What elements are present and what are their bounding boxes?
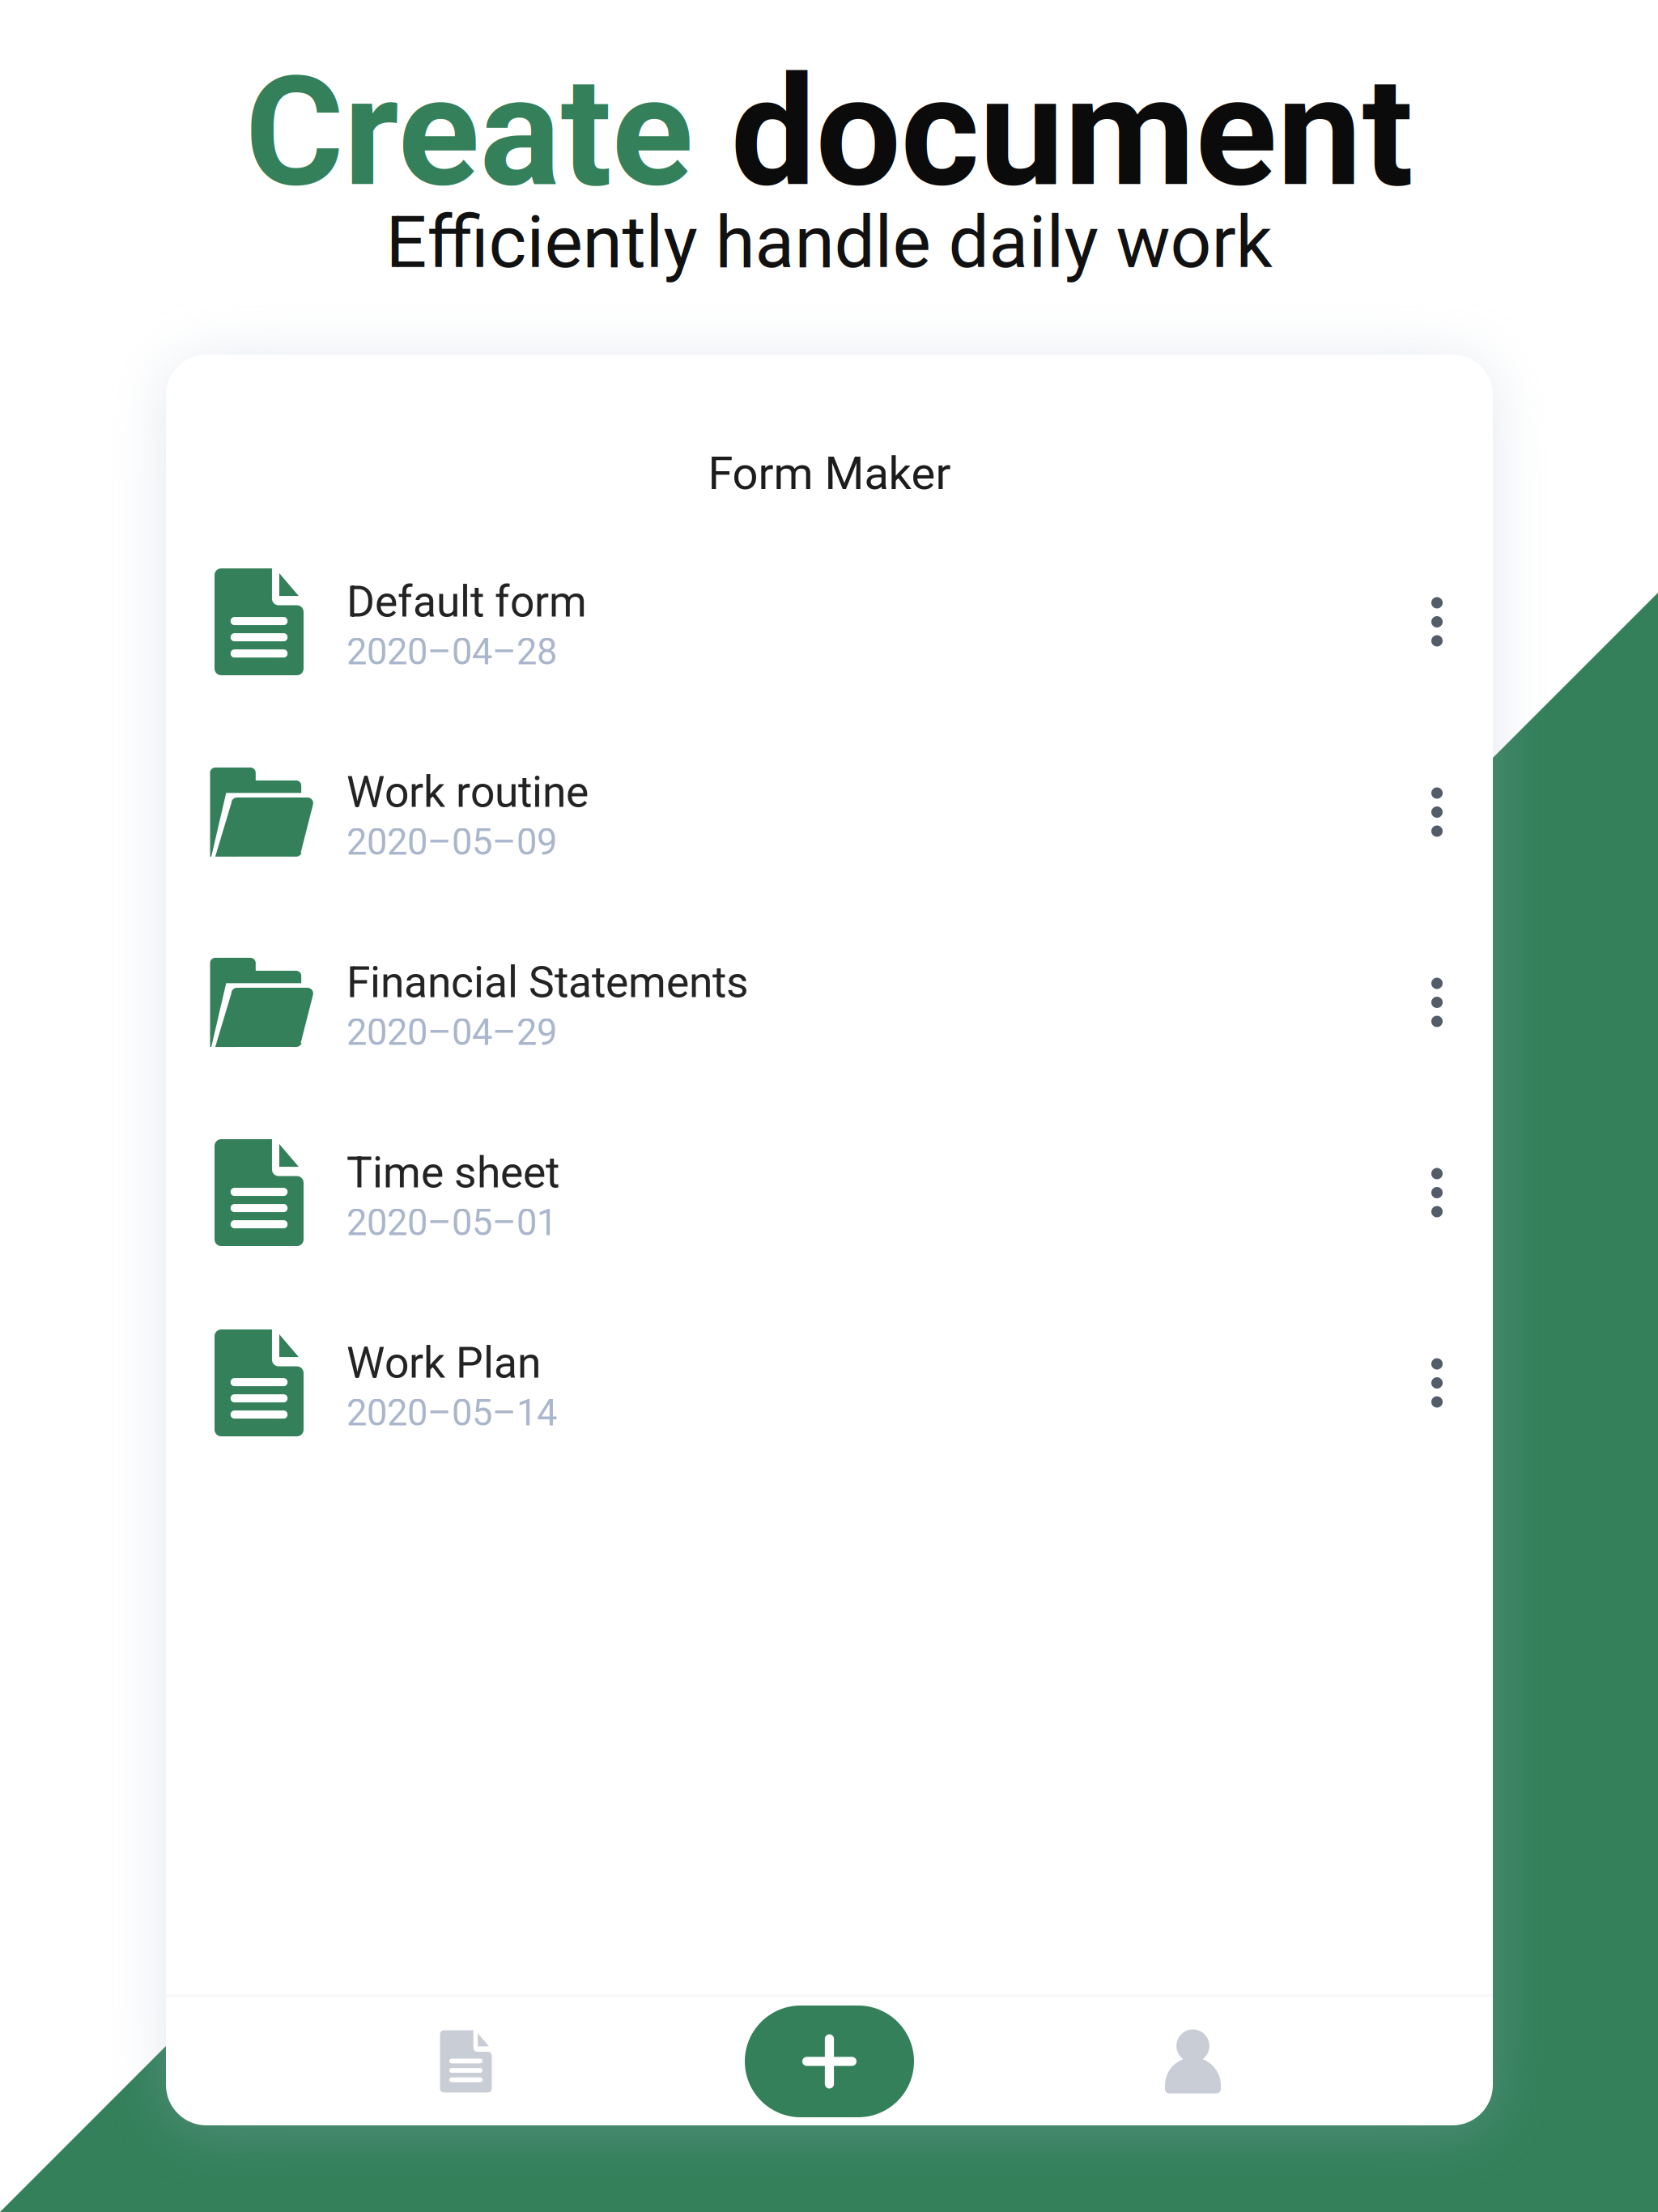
staticText: Efficiently handle daily work (386, 200, 1272, 285)
button[interactable]: Profile (1011, 1997, 1375, 2125)
button[interactable]: More options for Work routine (1392, 757, 1482, 867)
button[interactable]: More options for Financial Statements (1392, 947, 1482, 1057)
staticText: 2020–05–09 (346, 821, 557, 864)
staticText: Default form (346, 576, 587, 627)
staticText: Work routine (346, 767, 589, 817)
staticText: Create (245, 44, 731, 221)
staticText: 2020–05–01 (346, 1201, 557, 1244)
staticText: document (731, 44, 1413, 221)
button[interactable]: Work Plan (207, 1328, 1405, 1438)
staticText: Financial Statements (346, 957, 749, 1008)
button[interactable]: Financial Statements (207, 947, 1405, 1057)
staticText: 2020–04–29 (346, 1011, 557, 1054)
button[interactable]: More options for Work Plan (1392, 1328, 1482, 1438)
staticText: 2020–04–28 (346, 630, 557, 673)
button[interactable]: Create document (648, 1997, 1011, 2125)
staticText: Form Maker (708, 447, 951, 500)
button[interactable]: Default form (207, 567, 1405, 677)
button[interactable]: More options for Time sheet (1392, 1138, 1482, 1248)
button[interactable]: Time sheet (207, 1138, 1405, 1248)
staticText: 2020–05–14 (346, 1391, 557, 1434)
button[interactable]: More options for Default form (1392, 567, 1482, 677)
button[interactable]: Work routine (207, 757, 1405, 867)
staticText: Work Plan (346, 1338, 541, 1388)
button[interactable]: Documents (284, 1997, 648, 2125)
staticText: Time sheet (346, 1147, 559, 1198)
